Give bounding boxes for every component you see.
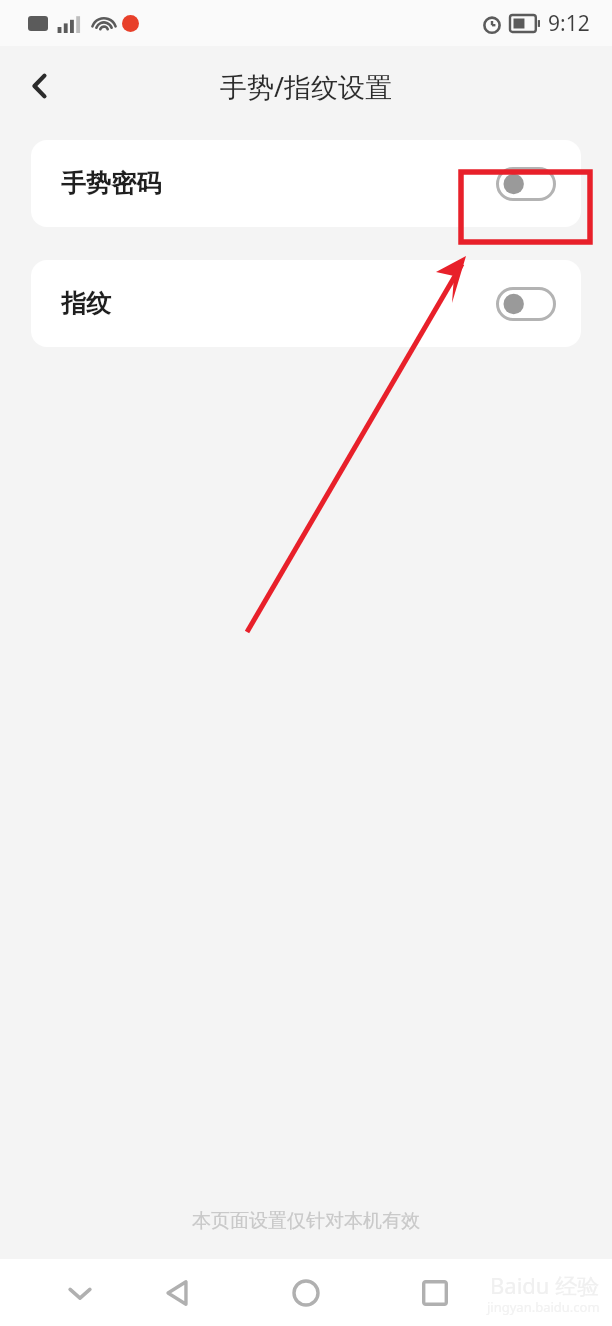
staticText: 指纹 (61, 288, 111, 319)
staticText: 手势/指纹设置 (220, 68, 393, 105)
button[interactable]: Recents (403, 1261, 467, 1325)
staticText: Baidu 经验 (490, 1270, 600, 1300)
button[interactable]: Toggle 手势密码 (495, 166, 557, 202)
staticText: jingyan.baidu.com (487, 1298, 600, 1316)
button[interactable]: Home (274, 1261, 338, 1325)
staticText: 本页面设置仅针对本机有效 (0, 1209, 612, 1233)
button[interactable]: Toggle 指纹 (495, 286, 557, 322)
button[interactable]: Collapse (48, 1261, 112, 1325)
button[interactable]: Back (145, 1261, 209, 1325)
button[interactable]: Back (8, 54, 72, 118)
staticText: 手势密码 (61, 168, 161, 199)
button[interactable]: 手势密码 (31, 140, 581, 227)
staticText: 9:12 (548, 9, 590, 38)
button[interactable]: 指纹 (31, 260, 581, 347)
